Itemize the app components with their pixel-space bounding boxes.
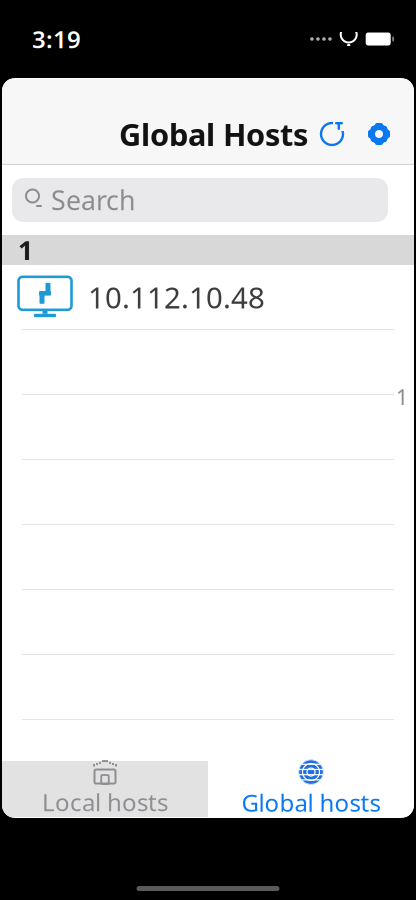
button[interactable]: Local hosts <box>2 761 208 817</box>
button[interactable]: Refresh <box>308 109 356 159</box>
staticText: 1 <box>18 232 33 268</box>
staticText: 3:19 <box>32 23 81 55</box>
staticText: Global Hosts <box>119 114 308 154</box>
staticText: Search <box>51 182 135 218</box>
button[interactable]: 10.112.10.48 <box>2 265 414 330</box>
staticText: 1 <box>396 383 408 411</box>
button[interactable]: Section index 1 <box>394 388 410 406</box>
button[interactable]: Settings <box>356 109 402 159</box>
staticText: 10.112.10.48 <box>88 277 265 316</box>
button[interactable]: Global hosts <box>208 761 414 817</box>
staticText: Global hosts <box>241 787 380 818</box>
button[interactable]: Search <box>12 178 388 222</box>
staticText: Local hosts <box>42 786 168 818</box>
